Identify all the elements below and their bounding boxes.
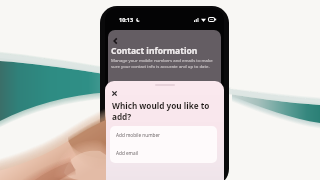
- button[interactable]: Add email: [110, 144, 217, 162]
- staticText: Add mobile number: [116, 132, 161, 138]
- staticText: Manage your mobile numbers and emails to…: [111, 57, 213, 70]
- button[interactable]: Close: [110, 89, 119, 98]
- staticText: 10:13: [119, 16, 134, 23]
- button[interactable]: Add mobile number: [110, 126, 217, 144]
- staticText: Which would you like to add?: [112, 100, 210, 122]
- staticText: Contact information: [111, 45, 198, 57]
- button[interactable]: Back: [111, 36, 121, 46]
- staticText: Add email: [116, 150, 139, 156]
